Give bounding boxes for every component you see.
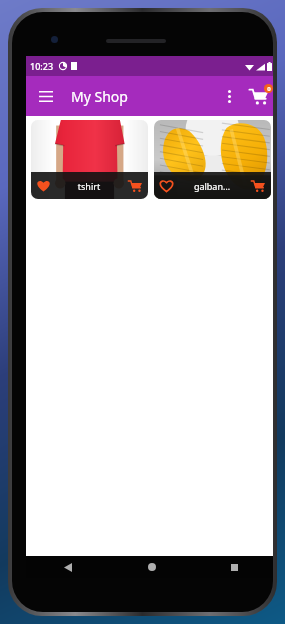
- button[interactable]: Recent apps: [193, 556, 273, 578]
- staticText: tshirt: [56, 180, 122, 192]
- staticText: My Shop: [71, 87, 128, 106]
- staticText: 0: [267, 85, 271, 93]
- staticText: 10:23: [30, 60, 54, 72]
- staticText: galban…: [179, 180, 245, 192]
- button[interactable]: Add tshirt to cart: [122, 172, 148, 199]
- button[interactable]: Open navigation menu: [26, 76, 66, 116]
- button[interactable]: Home: [110, 556, 193, 578]
- button[interactable]: Back: [26, 556, 110, 578]
- button[interactable]: Shopping cart: [242, 76, 273, 116]
- button[interactable]: More options: [216, 76, 242, 116]
- button[interactable]: Remove from favourites: [31, 172, 56, 199]
- button[interactable]: Remove from favourites: [31, 120, 148, 199]
- button[interactable]: Add galban… to cart: [245, 172, 271, 199]
- button[interactable]: Add to favourites: [154, 120, 271, 199]
- button[interactable]: Add to favourites: [154, 172, 179, 199]
